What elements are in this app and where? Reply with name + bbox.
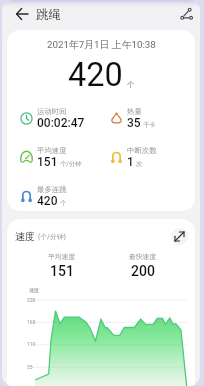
staticText: 最快速度 [129,252,157,261]
staticText: 平均速度 [37,146,67,155]
staticText: 最多连跳 [37,185,67,194]
staticText: 00:02:47 [37,116,85,130]
staticText: 千卡 [143,121,156,129]
staticText: 中断次数 [127,146,157,155]
button[interactable]: Expand chart [171,228,188,245]
staticText: 平均速度 [48,252,76,261]
button[interactable]: Share [178,5,196,23]
staticText: 35 [127,116,141,130]
staticText: 2021年7月1日 上午10:38 [47,39,156,51]
staticText: 220 [27,297,36,303]
staticText: 420 [68,56,123,94]
staticText: (个/分钟) [38,232,66,241]
staticText: 1 [127,155,134,169]
staticText: 跳绳 [36,7,61,22]
staticText: 151 [50,263,74,279]
staticText: 55 [27,364,33,370]
staticText: 速度 [15,230,35,243]
staticText: 个 [60,199,67,207]
staticText: 151 [37,155,58,169]
staticText: 个/分钟 [60,160,82,168]
staticText: 165 [27,319,36,325]
staticText: 个 [127,80,135,89]
staticText: 运动时间 [37,107,67,116]
staticText: 200 [131,263,155,279]
staticText: 速度 [29,287,39,293]
staticText: 热量 [127,107,142,116]
staticText: 次 [136,160,143,168]
button[interactable]: Back [13,5,31,23]
staticText: 110 [27,341,36,347]
staticText: 420 [37,194,58,208]
